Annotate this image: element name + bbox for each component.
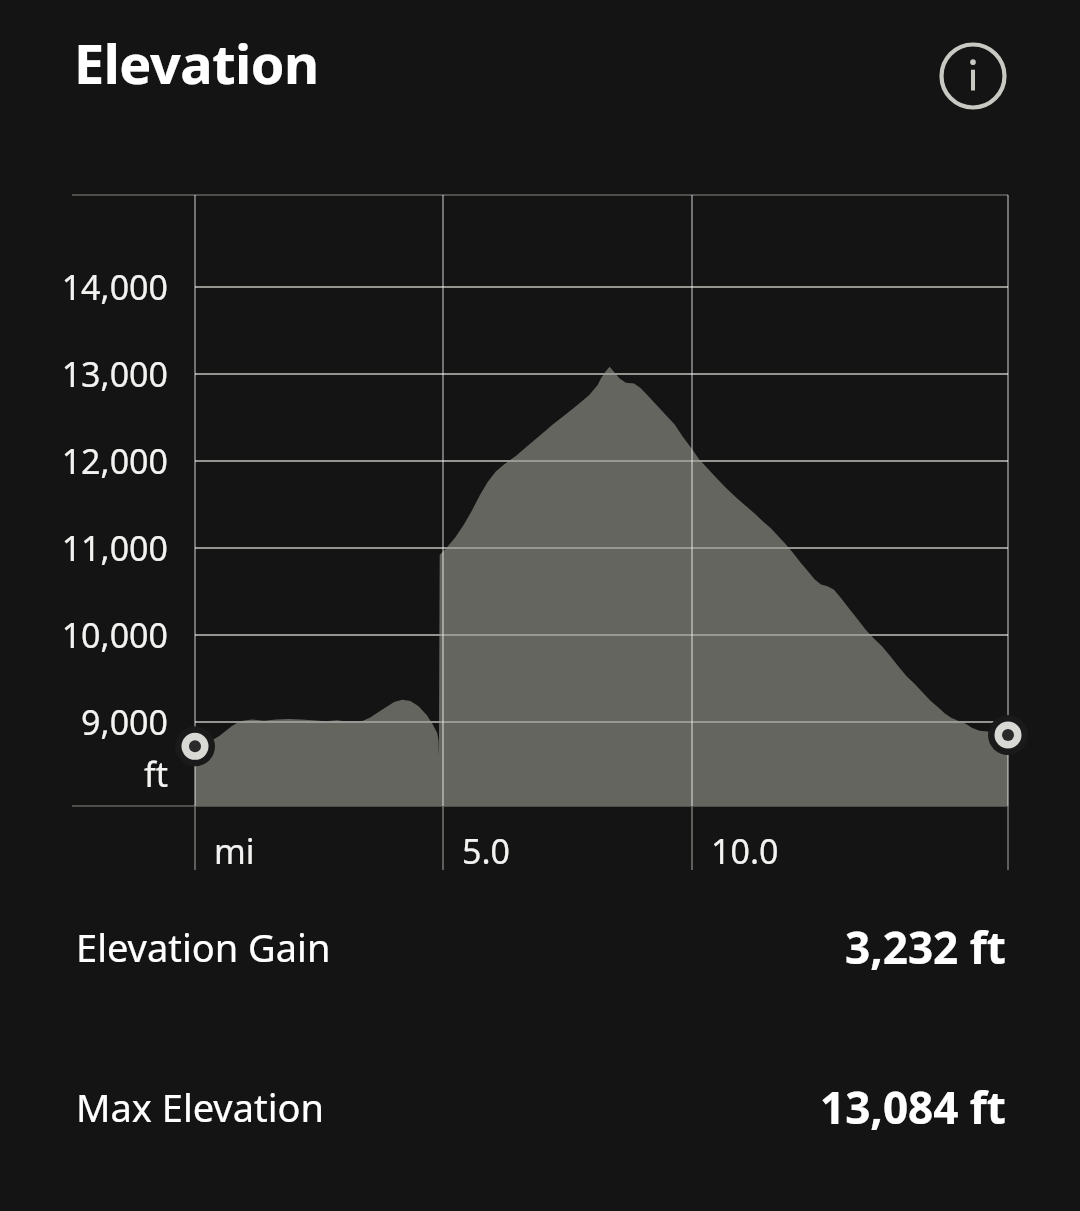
staticText: 11,000 — [0, 525, 168, 571]
staticText: 10,000 — [0, 612, 168, 658]
staticText: Max Elevation — [76, 1081, 324, 1133]
staticText: 9,000 — [0, 699, 168, 745]
staticText: 14,000 — [0, 264, 168, 310]
staticText: 13,084 ft — [820, 1077, 1006, 1137]
staticText: 3,232 ft — [845, 917, 1006, 977]
staticText: 13,000 — [0, 351, 168, 397]
button[interactable]: Max Elevation — [0, 1066, 1080, 1148]
staticText: Elevation — [74, 26, 319, 100]
staticText: Elevation Gain — [76, 921, 331, 973]
button[interactable]: Information about elevation — [939, 42, 1007, 110]
staticText: mi — [214, 828, 255, 874]
staticText: ft — [0, 751, 168, 797]
staticText: 12,000 — [0, 438, 168, 484]
staticText: 5.0 — [462, 828, 511, 874]
button[interactable]: Elevation Gain — [0, 906, 1080, 988]
staticText: 10.0 — [711, 828, 779, 874]
